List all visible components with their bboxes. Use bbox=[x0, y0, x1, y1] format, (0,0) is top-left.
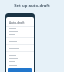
staticText: Auto-draft bbox=[9, 21, 25, 25]
staticText: Set up auto-draft bbox=[0, 3, 64, 9]
button[interactable]: Continue bbox=[8, 68, 32, 72]
